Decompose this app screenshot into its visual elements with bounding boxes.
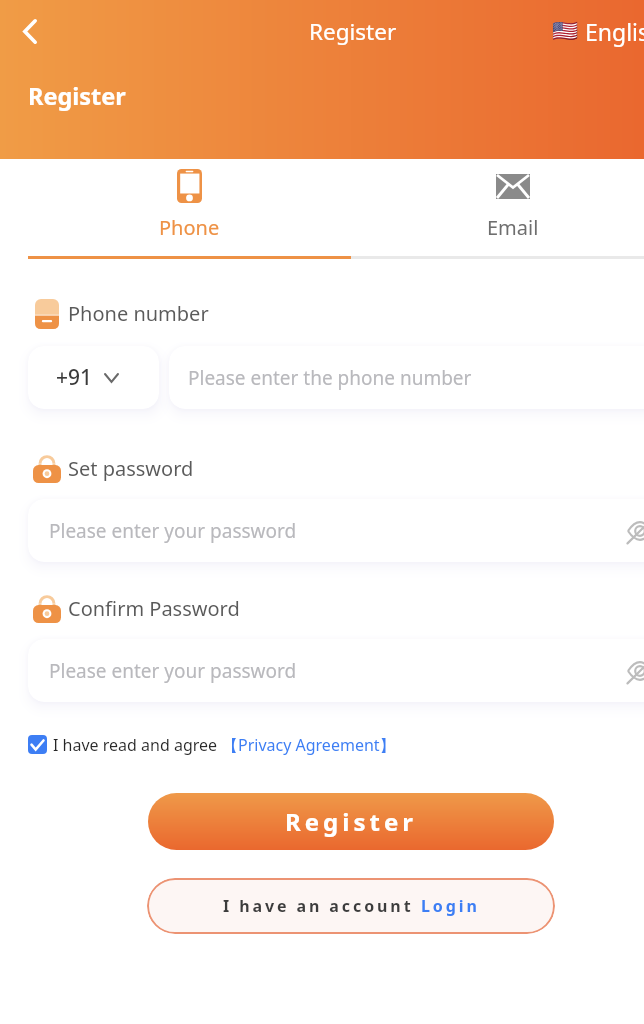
staticText: 🇺🇸 [552, 19, 579, 44]
staticText: Please enter your password [49, 658, 297, 684]
button[interactable]: Register [148, 793, 554, 850]
button[interactable]: +91 [28, 346, 159, 409]
staticText: I have read and agree [53, 734, 218, 756]
button[interactable]: Phone [28, 159, 351, 256]
button[interactable]: I have an account [147, 878, 555, 934]
staticText: Please enter the phone number [188, 365, 472, 391]
button[interactable]: Please enter your password [28, 639, 644, 702]
staticText: +91 [56, 363, 93, 392]
button[interactable]: 【Privacy Agreement】 [222, 734, 396, 756]
staticText: I have an account [223, 895, 421, 917]
staticText: Set password [68, 455, 194, 482]
staticText: Email [487, 214, 539, 241]
button[interactable]: Show password [625, 516, 644, 546]
staticText: Phone [159, 214, 220, 241]
staticText: Confirm Password [68, 595, 240, 622]
button[interactable]: Show password [625, 656, 644, 686]
button[interactable]: Please enter the phone number [169, 346, 644, 409]
button[interactable]: Back [8, 9, 52, 53]
button[interactable]: 🇺🇸 [552, 16, 644, 47]
staticText: Phone number [68, 300, 209, 327]
staticText: Register [28, 80, 126, 112]
staticText: Please enter your password [49, 518, 297, 544]
button[interactable]: Agree checkbox [28, 735, 47, 754]
staticText: Register [309, 16, 397, 47]
button[interactable]: Please enter your password [28, 499, 644, 562]
button[interactable]: Email [351, 159, 644, 256]
staticText: Login [421, 895, 480, 917]
staticText: English [585, 16, 644, 47]
staticText: Register [285, 805, 417, 838]
